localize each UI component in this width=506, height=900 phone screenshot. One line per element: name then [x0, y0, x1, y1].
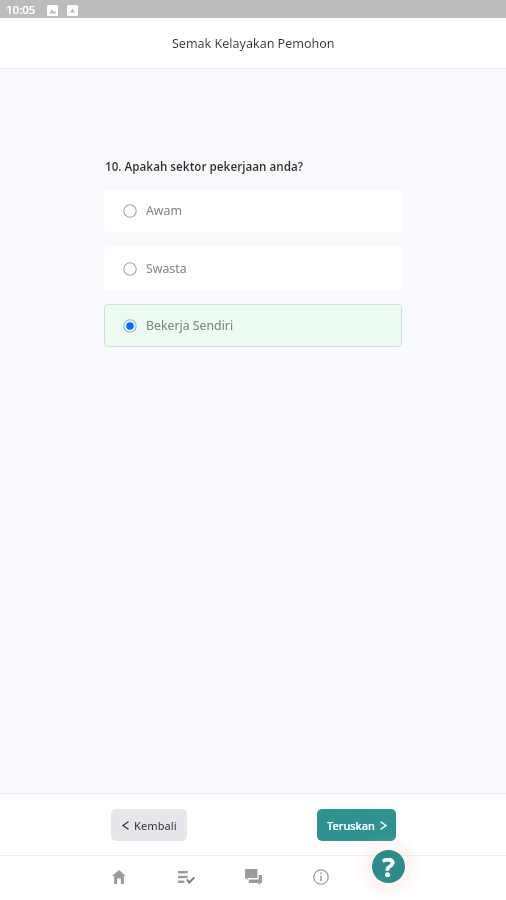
- staticText: 10:05: [6, 2, 36, 18]
- staticText: Teruskan: [327, 818, 375, 833]
- staticText: 10. Apakah sektor pekerjaan anda?: [105, 159, 304, 175]
- button[interactable]: Home: [103, 861, 135, 893]
- button[interactable]: Swasta: [104, 247, 402, 290]
- button[interactable]: Help: [372, 850, 405, 883]
- button[interactable]: Bekerja Sendiri: [104, 304, 402, 347]
- button[interactable]: Awam: [104, 189, 402, 232]
- button[interactable]: Information: [305, 861, 337, 893]
- button[interactable]: Teruskan: [317, 809, 396, 841]
- staticText: Swasta: [146, 260, 187, 277]
- button[interactable]: Kembali: [111, 809, 187, 841]
- staticText: Bekerja Sendiri: [146, 317, 234, 334]
- staticText: ?: [382, 850, 395, 881]
- button[interactable]: Messages: [237, 861, 269, 893]
- staticText: Kembali: [134, 818, 177, 833]
- button[interactable]: Tasks: [170, 861, 202, 893]
- staticText: Semak Kelayakan Pemohon: [172, 35, 335, 52]
- staticText: Awam: [146, 202, 182, 219]
